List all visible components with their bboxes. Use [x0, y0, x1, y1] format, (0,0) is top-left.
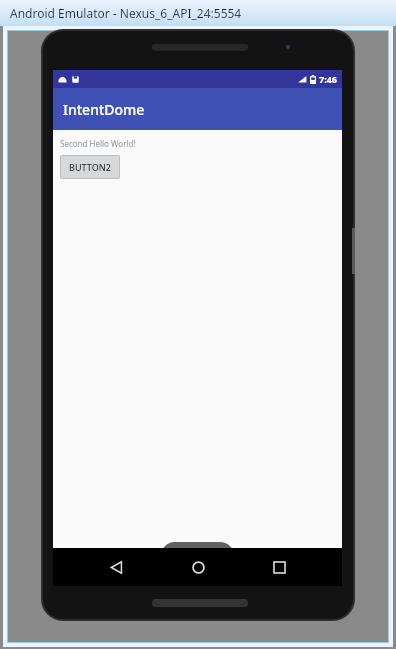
staticText: 7:46: [319, 73, 337, 85]
staticText: go ahead: [177, 550, 218, 562]
staticText: BUTTON2: [69, 161, 111, 173]
button[interactable]: Back: [97, 548, 135, 586]
staticText: Second Hello World!: [60, 138, 136, 149]
button[interactable]: Home: [179, 548, 217, 586]
staticText: IntentDome: [63, 100, 145, 119]
button[interactable]: BUTTON2: [60, 155, 120, 179]
button[interactable]: Recent apps: [260, 548, 298, 586]
staticText: Android Emulator - Nexus_6_API_24:5554: [10, 5, 242, 21]
button[interactable]: go ahead: [161, 542, 234, 570]
